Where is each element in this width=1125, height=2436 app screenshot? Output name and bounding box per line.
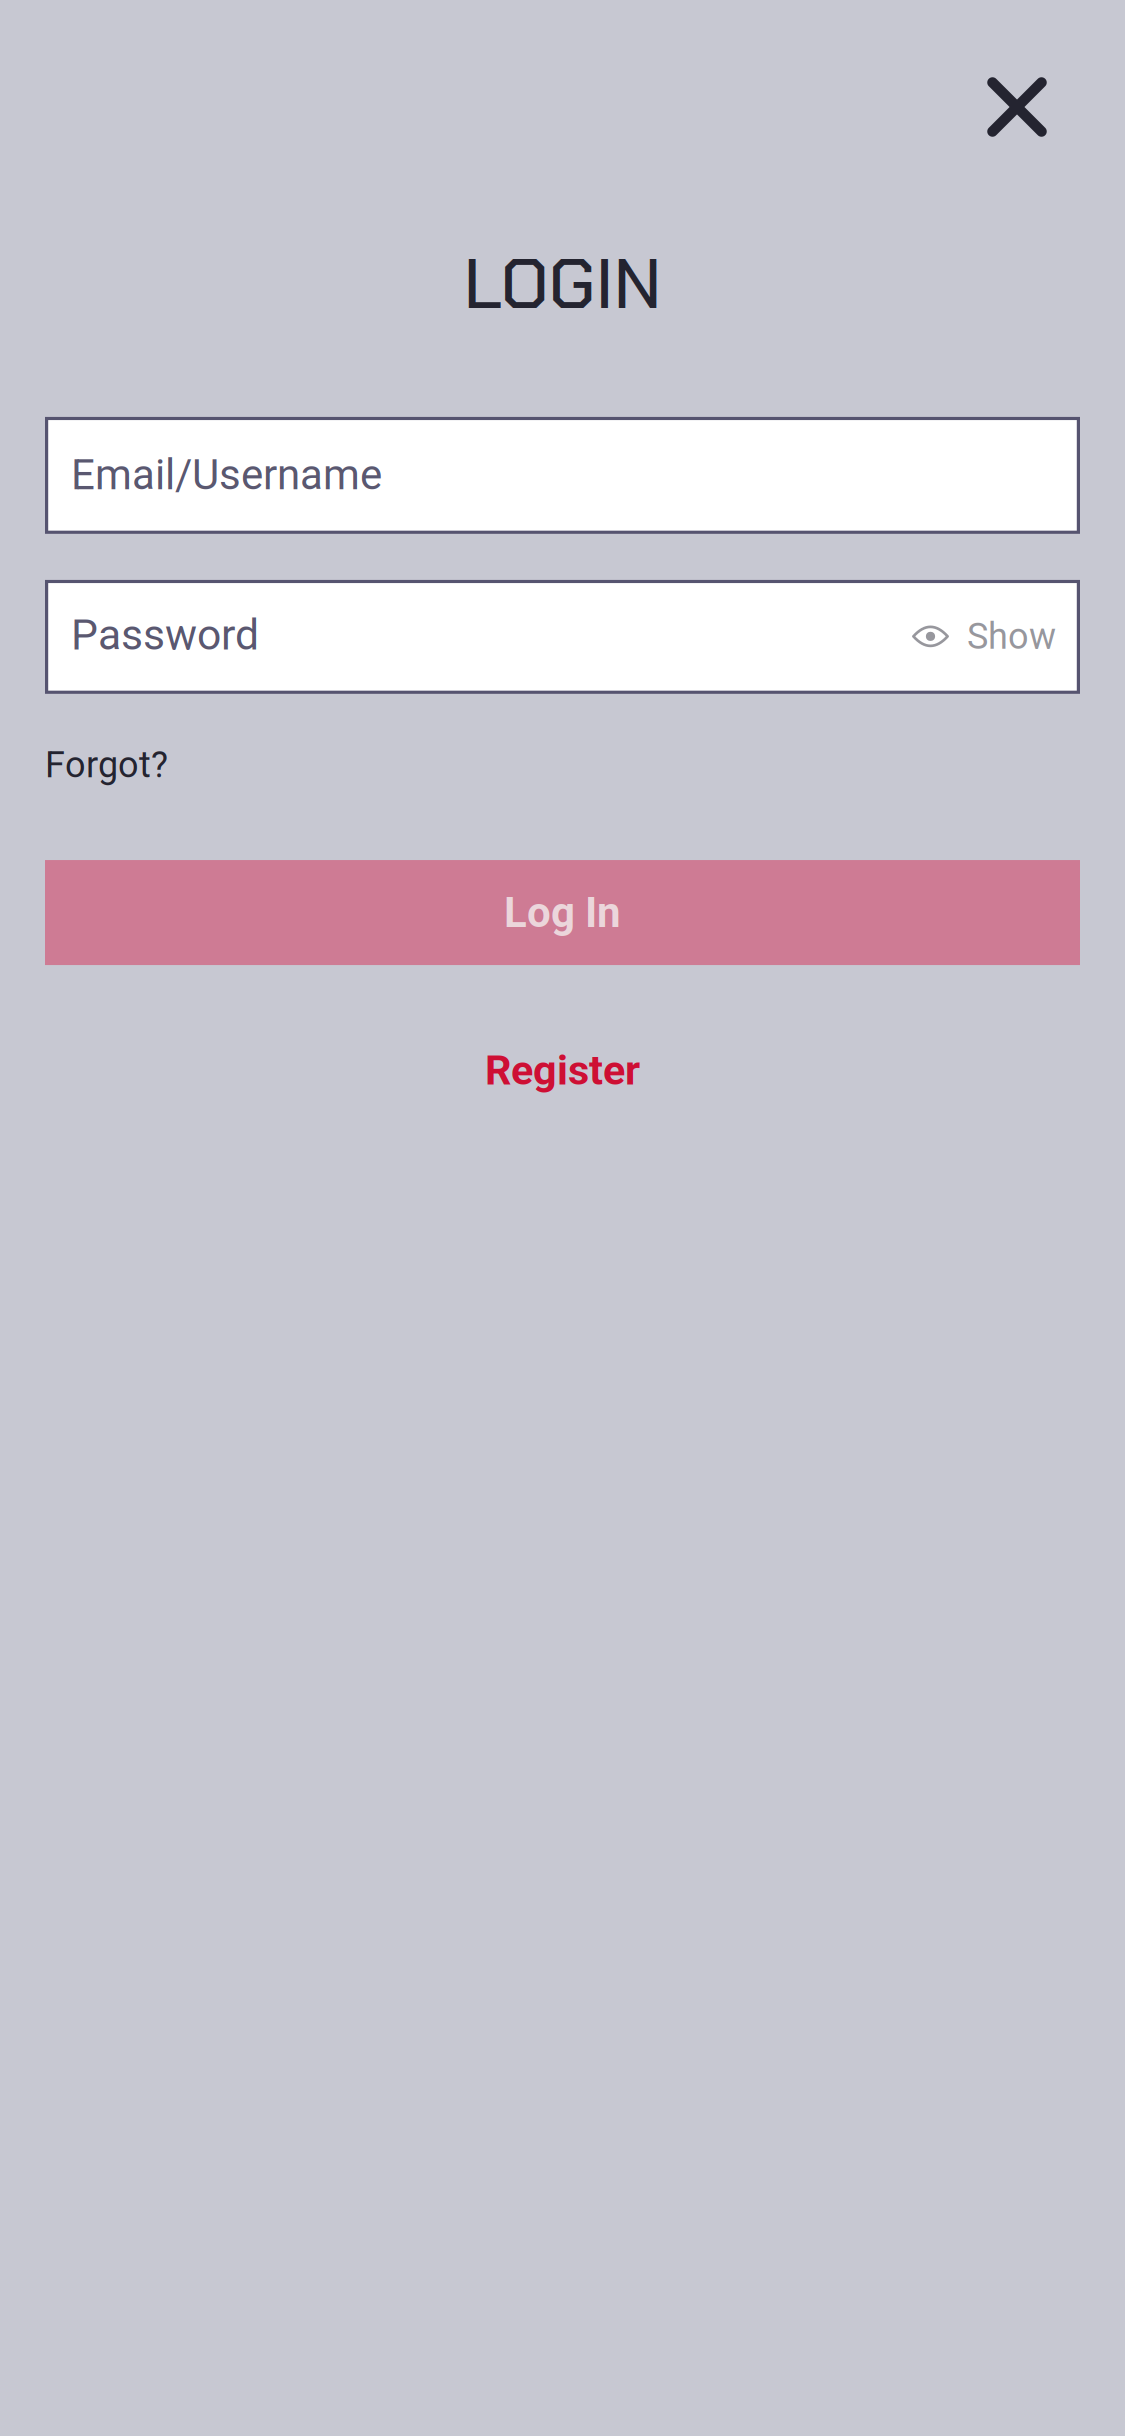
staticText: Password xyxy=(71,610,259,660)
button[interactable]: Show xyxy=(912,615,1056,658)
button[interactable]: Forgot? xyxy=(45,744,168,786)
staticText: Forgot? xyxy=(45,744,168,786)
button[interactable]: Log In xyxy=(45,860,1080,965)
staticText: LOGIN xyxy=(463,238,661,330)
button[interactable]: Close xyxy=(963,53,1071,161)
staticText: Email/Username xyxy=(71,450,382,499)
staticText: Show xyxy=(967,615,1056,657)
staticText: Register xyxy=(485,1046,640,1094)
button[interactable]: Register xyxy=(485,1046,640,1094)
staticText: Log In xyxy=(504,888,621,937)
